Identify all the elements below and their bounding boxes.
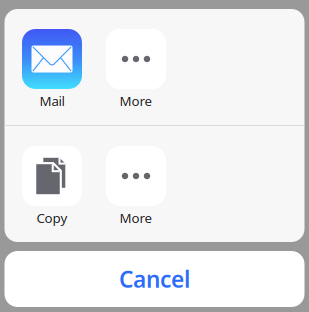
staticText: Cancel (119, 264, 190, 294)
staticText: Copy (36, 209, 67, 227)
button[interactable]: More (94, 146, 178, 242)
button[interactable]: Cancel (4, 251, 304, 307)
button[interactable]: More (94, 29, 178, 125)
staticText: More (119, 92, 152, 110)
staticText: Mail (39, 92, 64, 110)
button[interactable]: Mail (10, 29, 94, 125)
button[interactable]: Copy (10, 146, 94, 242)
staticText: More (119, 209, 152, 227)
